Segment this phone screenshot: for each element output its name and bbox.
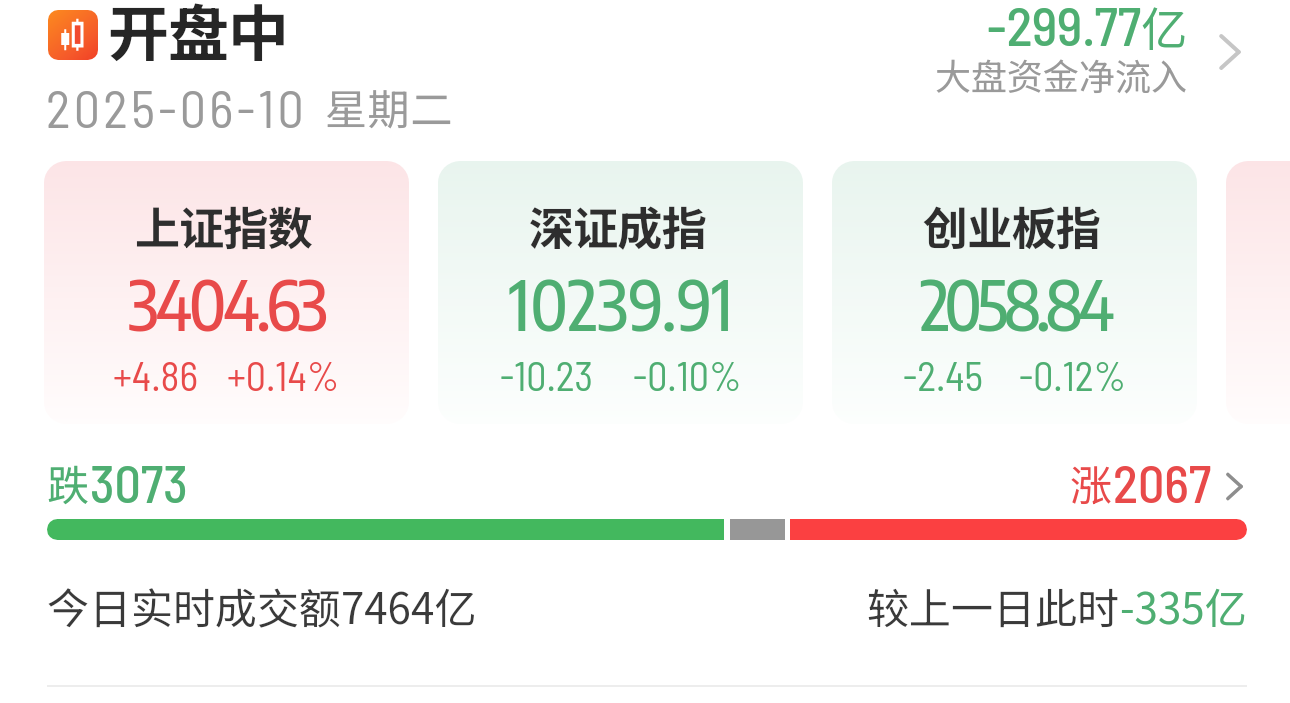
staticText: +0.14% [227,351,340,399]
button[interactable] [1226,161,1290,424]
staticText: 今日实时成交额7464亿 [47,575,477,635]
staticText: -0.12% [1019,351,1127,399]
staticText: -335亿 [1120,575,1247,635]
button[interactable]: 上证指数 [44,161,409,424]
staticText: 上证指数 [135,193,313,258]
staticText: -299.77亿 [987,0,1188,59]
staticText: 涨 [1070,452,1113,513]
button[interactable]: -299.77亿 [882,0,1188,111]
staticText: 2058.84 [920,261,1110,346]
staticText: 创业板指 [923,193,1101,258]
button[interactable]: 涨 [1070,451,1212,513]
button[interactable]: 创业板指 [832,161,1197,424]
button[interactable]: 开盘中 [44,0,289,86]
staticText: 10239.91 [509,261,733,346]
staticText: 跌 [47,452,90,513]
button[interactable]: 深证成指 [438,161,803,424]
button[interactable]: 跌 [47,451,188,513]
staticText: +4.86 [113,351,198,399]
staticText: 3073 [90,451,188,513]
button[interactable]: 涨跌家数详情 [1213,465,1255,507]
staticText: 2025-06-10 [46,76,307,138]
button[interactable]: 今日实时成交额7464亿 [47,575,1247,635]
staticText: -2.45 [903,351,984,399]
staticText: 2067 [1113,451,1212,513]
staticText: 较上一日此时 [867,575,1120,635]
staticText: 星期二 [325,76,453,137]
staticText: 开盘中 [108,0,289,71]
button[interactable]: 查看资金流向 [1200,22,1260,82]
staticText: -0.10% [633,351,742,399]
staticText: -10.23 [500,351,593,399]
staticText: 深证成指 [529,193,707,258]
staticText: 大盘资金净流入 [935,48,1188,100]
staticText: 3404.63 [128,261,325,346]
